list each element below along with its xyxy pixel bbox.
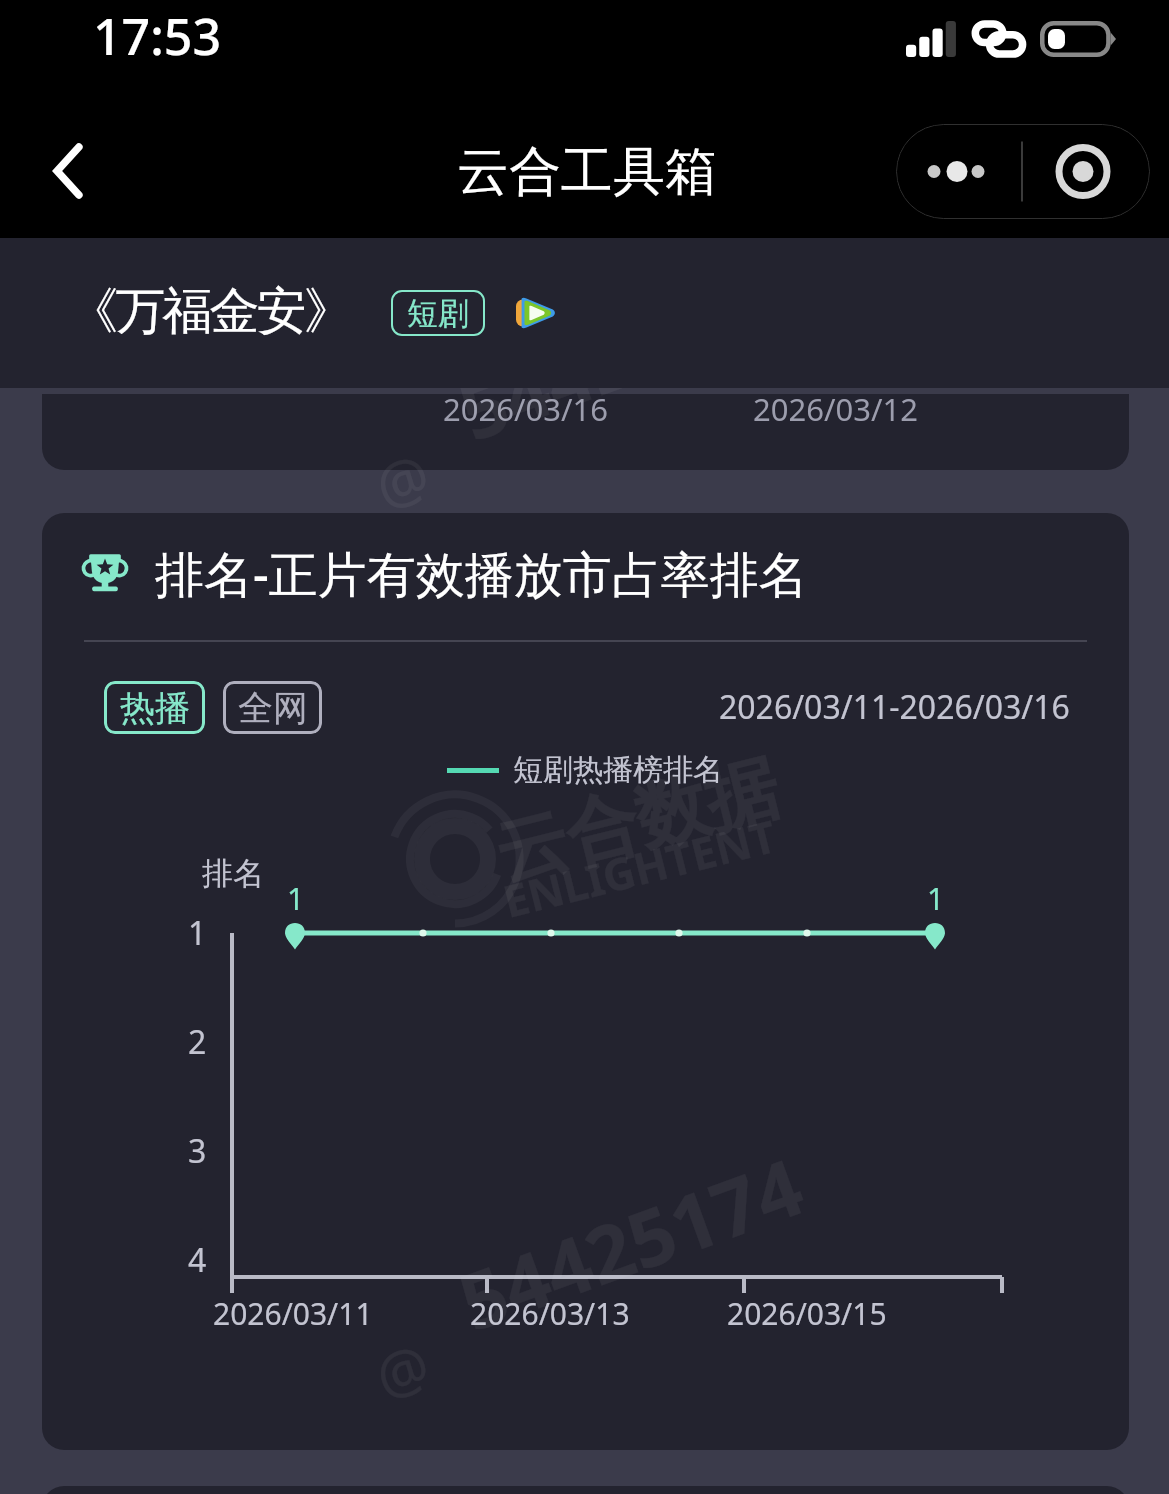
staticText: 1 <box>188 911 207 955</box>
staticText: 短剧热播榜排名 <box>513 751 723 789</box>
button[interactable]: 短剧 <box>391 290 485 336</box>
staticText: 2026/03/11-2026/03/16 <box>719 685 1070 729</box>
staticText: 3 <box>188 1129 207 1173</box>
staticText: 云合工具箱 <box>457 139 717 205</box>
button[interactable]: Back <box>26 126 110 216</box>
staticText: 热播 <box>120 686 190 730</box>
staticText: 1 <box>927 878 945 919</box>
staticText: 全网 <box>238 686 308 730</box>
staticText: 排名-正片有效播放市占率排名 <box>155 540 808 607</box>
staticText: 4 <box>188 1238 207 1282</box>
staticText: 2026/03/11 <box>213 1293 373 1334</box>
button[interactable]: 全网 <box>223 681 322 734</box>
staticText: 1 <box>287 878 305 919</box>
staticText: 2026/03/12 <box>753 394 918 430</box>
staticText: 2026/03/15 <box>727 1293 887 1334</box>
staticText: 云合数据 <box>486 742 788 900</box>
staticText: 《万福金安》 <box>70 280 352 343</box>
staticText: 2026/03/13 <box>470 1293 630 1334</box>
staticText: 2026/03/16 <box>443 394 608 430</box>
staticText: ENLIGHTENT <box>497 805 782 931</box>
staticText: 短剧 <box>407 294 469 333</box>
staticText: 排名 <box>202 854 264 893</box>
staticText: @ <box>364 1323 441 1416</box>
staticText: 17:53 <box>93 2 221 70</box>
staticText: 54425174 <box>445 242 816 464</box>
staticText: 54425174 <box>445 1132 816 1354</box>
button[interactable]: More options <box>896 124 1150 219</box>
button[interactable]: 排名-正片有效播放市占率排名 <box>42 513 1129 1450</box>
button[interactable]: Play on Tencent Video <box>510 286 562 340</box>
button[interactable]: 热播 <box>104 681 205 734</box>
staticText: 2 <box>188 1020 207 1064</box>
staticText: @ <box>364 433 441 526</box>
